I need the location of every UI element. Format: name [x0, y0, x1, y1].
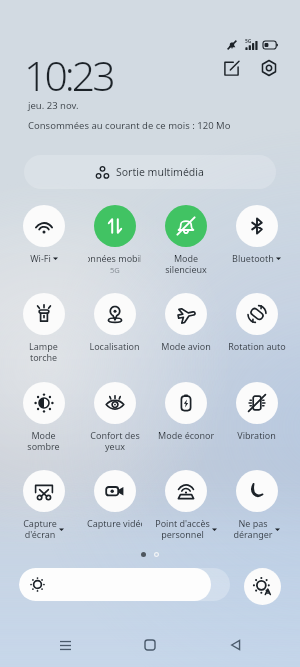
button[interactable]: Capture d'écran	[8, 470, 79, 540]
button[interactable]: Localisation	[79, 293, 150, 363]
staticText: Mode silencieux	[165, 252, 207, 276]
staticText: Vibration	[237, 429, 276, 441]
button[interactable]: Lampe torche	[8, 293, 79, 363]
staticText: Mode sombre	[27, 429, 60, 453]
button[interactable]: Modifier	[216, 53, 246, 83]
button[interactable]: Point d'accès personnel	[150, 470, 221, 540]
staticText: Sortie multimédia	[116, 165, 204, 179]
button[interactable]: Ne pas déranger	[221, 470, 292, 540]
staticText: Confort des yeux	[90, 429, 140, 453]
staticText: Consommées au courant de ce mois : 120 M…	[28, 119, 231, 132]
staticText: Lampe torche	[29, 340, 58, 364]
button[interactable]: Retour	[215, 625, 255, 665]
button[interactable]: Sortie multimédia	[24, 155, 276, 189]
staticText: 5G	[110, 265, 120, 275]
staticText: 5G	[245, 38, 252, 45]
button[interactable]: Mode économie d'énergie	[150, 382, 221, 452]
button[interactable]: Luminosité automatique	[244, 568, 281, 605]
staticText: Mode économie d'énergie	[158, 429, 214, 441]
staticText: Capture vidéo d'écran	[87, 517, 142, 529]
button[interactable]: Confort des yeux	[79, 382, 150, 452]
staticText: Mode avion	[161, 340, 211, 352]
staticText: jeu. 23 nov.	[28, 99, 79, 112]
staticText: Localisation	[89, 340, 140, 352]
staticText: Rotation auto	[228, 340, 286, 352]
staticText: Wi-Fi	[30, 252, 51, 264]
button[interactable]: Wi-Fi	[8, 205, 79, 275]
button[interactable]: Vibration	[221, 382, 292, 452]
button[interactable]: Paramètres	[254, 53, 284, 83]
staticText: 10:23	[24, 47, 113, 103]
button[interactable]: Mode avion	[150, 293, 221, 363]
button[interactable]: Bluetooth	[221, 205, 292, 275]
button[interactable]: Données mobiles	[79, 205, 150, 275]
staticText: Bluetooth	[232, 252, 274, 264]
button[interactable]: Rotation auto	[221, 293, 292, 363]
button[interactable]: Mode silencieux	[150, 205, 221, 275]
button[interactable]: Accueil	[130, 625, 170, 665]
button[interactable]: Capture vidéo d'écran	[79, 470, 150, 540]
staticText: Données mobiles	[88, 252, 141, 264]
button[interactable]: Luminosité	[19, 568, 230, 601]
staticText: Point d'accès personnel	[155, 517, 210, 541]
button[interactable]: Menu	[45, 625, 85, 665]
button[interactable]: Mode sombre	[8, 382, 79, 452]
staticText: Ne pas déranger	[233, 517, 273, 541]
staticText: Capture d'écran	[23, 517, 57, 541]
